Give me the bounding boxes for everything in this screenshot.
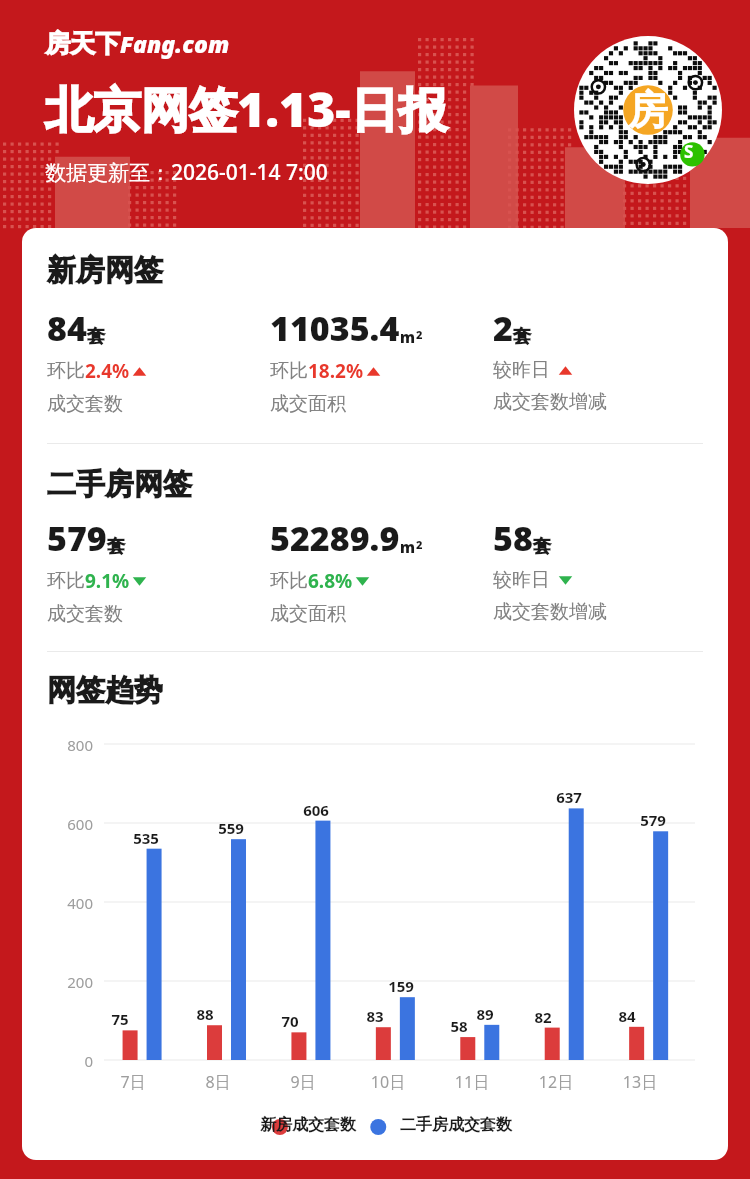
staticText: 11035.4 <box>270 305 400 351</box>
staticText: 套 <box>107 535 125 558</box>
staticText: 8日 <box>189 1071 247 1093</box>
staticText: 环比 <box>47 569 85 593</box>
staticText: 成交套数增减 <box>493 600 607 624</box>
button[interactable]: 52289.9 <box>270 515 423 626</box>
staticText: 新房网签 <box>47 252 163 289</box>
staticText: 800 <box>47 735 93 755</box>
staticText: 成交套数 <box>47 602 123 626</box>
staticText: 2.4% <box>85 358 130 384</box>
staticText: 18.2% <box>308 358 364 384</box>
staticText: 13日 <box>611 1071 669 1093</box>
staticText: 606 <box>301 800 331 820</box>
staticText: 82 <box>531 1007 555 1027</box>
staticText: 套 <box>513 325 531 348</box>
staticText: 6.8% <box>308 568 353 594</box>
staticText: 北京网签1.13-日报 <box>45 76 447 142</box>
staticText: 新房成交套数 <box>260 1115 356 1135</box>
staticText: 58 <box>493 515 533 561</box>
staticText: 2 <box>416 537 423 552</box>
staticText: m <box>400 537 416 557</box>
button[interactable]: 小程序二维码 <box>574 36 722 184</box>
button[interactable]: 2 <box>493 305 607 414</box>
staticText: 成交面积 <box>270 392 346 416</box>
staticText: 成交套数 <box>47 392 123 416</box>
staticText: 成交套数增减 <box>493 390 607 414</box>
staticText: 70 <box>278 1011 302 1031</box>
staticText: 84 <box>47 305 87 351</box>
staticText: 较昨日 <box>493 568 550 592</box>
staticText: 579 <box>47 515 107 561</box>
staticText: 84 <box>615 1006 639 1026</box>
staticText: 83 <box>363 1006 387 1026</box>
staticText: 400 <box>47 893 93 913</box>
button[interactable]: 58 <box>493 515 607 624</box>
staticText: 58 <box>447 1016 471 1036</box>
staticText: 房天下 <box>45 28 120 59</box>
button[interactable]: 84 <box>47 305 147 416</box>
staticText: 579 <box>638 810 668 830</box>
staticText: 二手房成交套数 <box>400 1115 512 1135</box>
staticText: 环比 <box>47 359 85 383</box>
staticText: 套 <box>87 325 105 348</box>
staticText: 637 <box>554 787 584 807</box>
staticText: 559 <box>216 818 246 838</box>
staticText: 11日 <box>443 1071 501 1093</box>
staticText: 成交面积 <box>270 602 346 626</box>
staticText: m <box>400 327 416 347</box>
staticText: 网签趋势 <box>47 672 163 709</box>
staticText: 房 <box>628 85 668 135</box>
staticText: 套 <box>533 535 551 558</box>
staticText: Fang.com <box>120 28 230 59</box>
staticText: 535 <box>131 828 161 848</box>
staticText: 75 <box>108 1009 132 1029</box>
staticText: 9日 <box>274 1071 332 1093</box>
staticText: 159 <box>386 976 416 996</box>
staticText: 600 <box>47 814 93 834</box>
staticText: 较昨日 <box>493 358 550 382</box>
staticText: 二手房网签 <box>47 466 192 503</box>
staticText: 89 <box>470 1004 500 1024</box>
staticText: 2 <box>493 305 513 351</box>
button[interactable]: 579 <box>47 515 147 626</box>
button[interactable]: 11035.4 <box>270 305 423 416</box>
staticText: 200 <box>47 972 93 992</box>
staticText: S <box>684 140 694 163</box>
staticText: 数据更新至：2026-01-14 7:00 <box>45 158 328 187</box>
staticText: 9.1% <box>85 568 130 594</box>
staticText: 7日 <box>104 1071 162 1093</box>
staticText: 10日 <box>359 1071 417 1093</box>
staticText: 0 <box>47 1051 93 1071</box>
staticText: 88 <box>193 1004 217 1024</box>
staticText: 52289.9 <box>270 515 400 561</box>
staticText: 环比 <box>270 359 308 383</box>
staticText: 12日 <box>527 1071 585 1093</box>
staticText: 2 <box>416 327 423 342</box>
staticText: 环比 <box>270 569 308 593</box>
